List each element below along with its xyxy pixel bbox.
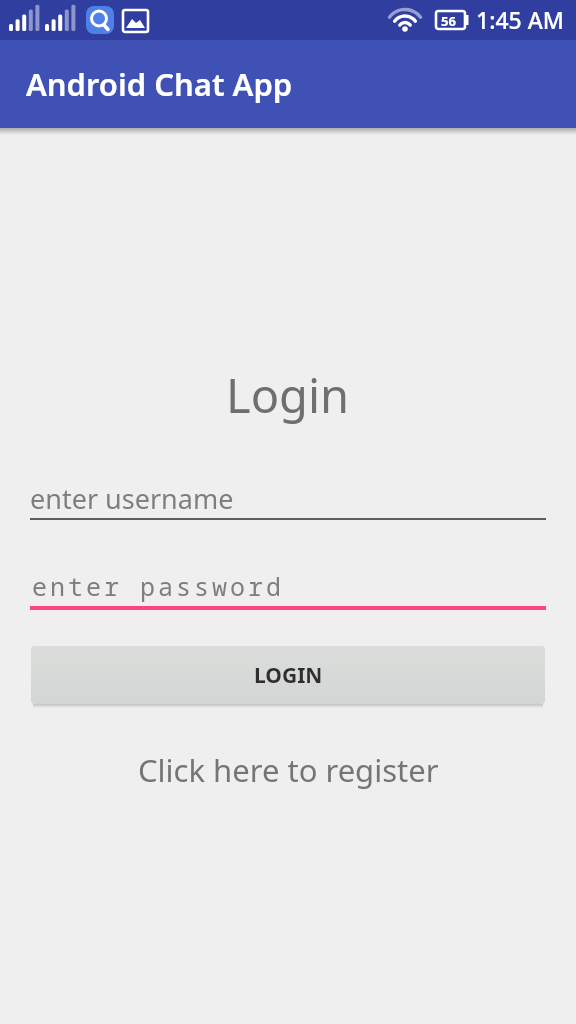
button[interactable]: LOGIN bbox=[31, 646, 545, 704]
staticText: Android Chat App bbox=[26, 63, 293, 105]
staticText: 56 bbox=[441, 12, 456, 30]
staticText: enter password bbox=[32, 569, 285, 603]
staticText: 1:45 AM bbox=[476, 4, 564, 35]
staticText: LOGIN bbox=[254, 661, 323, 690]
staticText: Login bbox=[226, 363, 350, 427]
button[interactable]: enter password bbox=[30, 569, 546, 610]
button[interactable]: enter username bbox=[30, 478, 546, 520]
staticText: enter username bbox=[30, 480, 234, 517]
button[interactable]: Click here to register bbox=[138, 749, 439, 791]
